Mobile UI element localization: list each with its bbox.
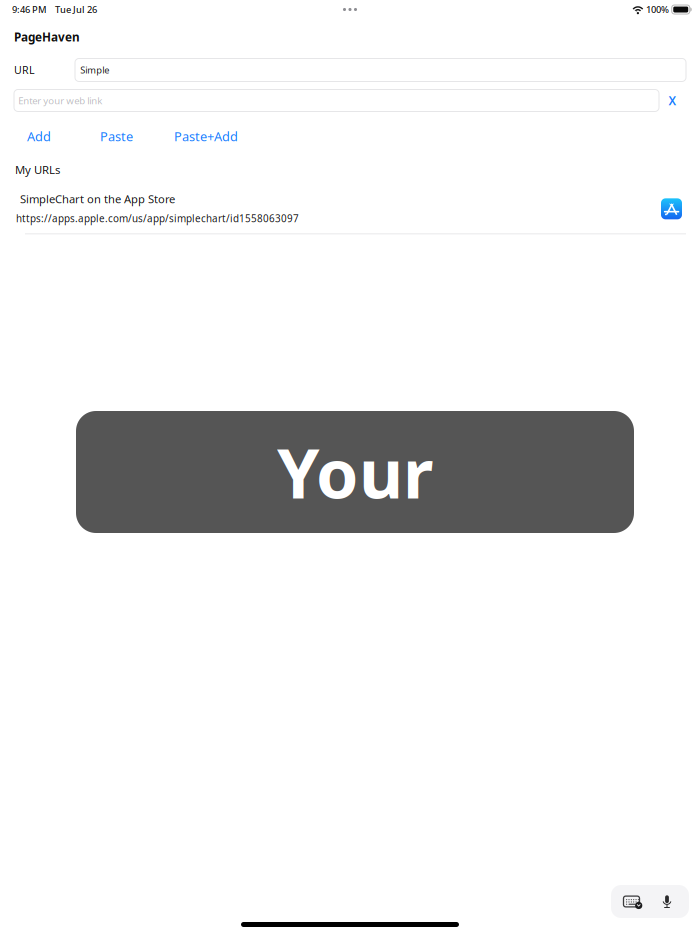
staticText: 100% [646, 3, 669, 16]
staticText: Paste+Add [174, 127, 238, 145]
button[interactable]: Hide keyboard [611, 885, 652, 918]
staticText: Simple [80, 64, 109, 76]
staticText: https://apps.apple.com/us/app/simplechar… [16, 212, 299, 225]
staticText: Paste [100, 127, 133, 145]
staticText: Add [27, 127, 51, 145]
staticText: SimpleChart on the App Store [20, 191, 175, 207]
button[interactable]: Paste+Add [174, 127, 238, 145]
staticText: URL [14, 63, 35, 77]
button[interactable]: Add [27, 127, 51, 145]
staticText: Tue Jul 26 [55, 3, 97, 16]
staticText: X [668, 92, 676, 108]
button[interactable]: X [659, 89, 686, 111]
button[interactable]: Your [76, 411, 634, 533]
staticText: PageHaven [14, 29, 80, 45]
staticText: Your [277, 427, 433, 517]
button[interactable]: Paste [100, 127, 133, 145]
staticText: 9:46 PM [12, 3, 47, 16]
staticText: My URLs [15, 162, 60, 177]
button[interactable]: Dictation [652, 885, 689, 918]
staticText: Enter your web link [18, 94, 102, 107]
